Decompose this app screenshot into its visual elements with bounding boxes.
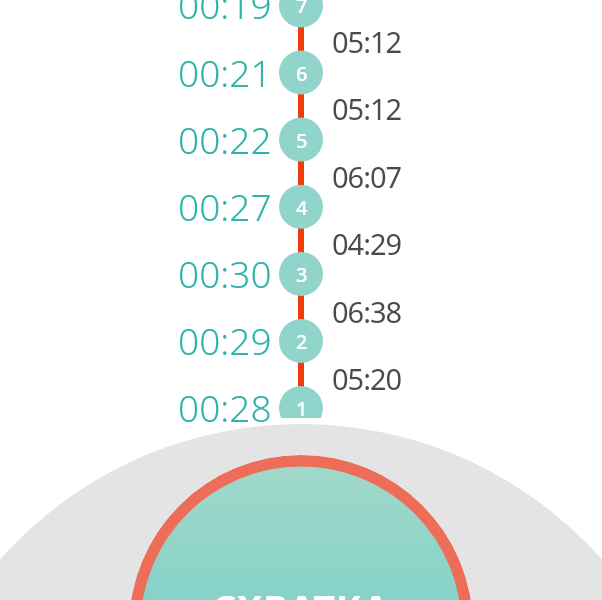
staticText: 06:38 (332, 292, 402, 331)
staticText: 04:29 (332, 224, 402, 263)
button[interactable]: 05:12 (332, 21, 442, 61)
button[interactable]: 00:29 (152, 315, 272, 363)
button[interactable]: 4 (280, 185, 324, 229)
button[interactable]: 06:07 (332, 156, 442, 196)
staticText: 00:19 (178, 0, 272, 27)
staticText: 00:30 (178, 248, 272, 296)
button[interactable]: 05:20 (332, 358, 442, 398)
staticText: 00:22 (178, 114, 272, 162)
button[interactable]: 00:22 (152, 114, 272, 162)
staticText: 05:12 (332, 22, 402, 61)
button[interactable]: 06:38 (332, 291, 442, 331)
button[interactable]: 00:28 (152, 382, 272, 430)
staticText: 5 (296, 127, 308, 154)
staticText: 05:12 (332, 89, 402, 128)
button[interactable]: 00:21 (152, 47, 272, 95)
button[interactable]: 5 (280, 118, 324, 162)
button[interactable]: Start contraction (129, 455, 473, 600)
button[interactable]: 6 (280, 51, 324, 95)
button[interactable]: 05:12 (332, 88, 442, 128)
staticText: 05:20 (332, 359, 402, 398)
staticText: 06:07 (332, 157, 402, 196)
button[interactable]: 04:29 (332, 223, 442, 263)
staticText: 1 (296, 395, 308, 418)
button[interactable]: 2 (280, 319, 324, 363)
button[interactable]: 00:27 (152, 181, 272, 229)
button[interactable]: 7 (280, 0, 324, 27)
staticText: 00:29 (178, 315, 272, 363)
button[interactable]: 00:19 (152, 0, 272, 27)
staticText: 3 (296, 261, 308, 288)
staticText: СХВАТКА (212, 583, 390, 600)
staticText: 7 (296, 0, 308, 19)
staticText: 2 (296, 328, 308, 355)
staticText: 4 (296, 194, 308, 221)
staticText: 00:21 (178, 47, 272, 95)
button[interactable]: 1 (280, 386, 324, 418)
staticText: 00:28 (178, 382, 272, 430)
button[interactable]: 00:30 (152, 248, 272, 296)
button[interactable]: 3 (280, 252, 324, 296)
staticText: 00:27 (178, 181, 272, 229)
staticText: 6 (296, 60, 308, 87)
